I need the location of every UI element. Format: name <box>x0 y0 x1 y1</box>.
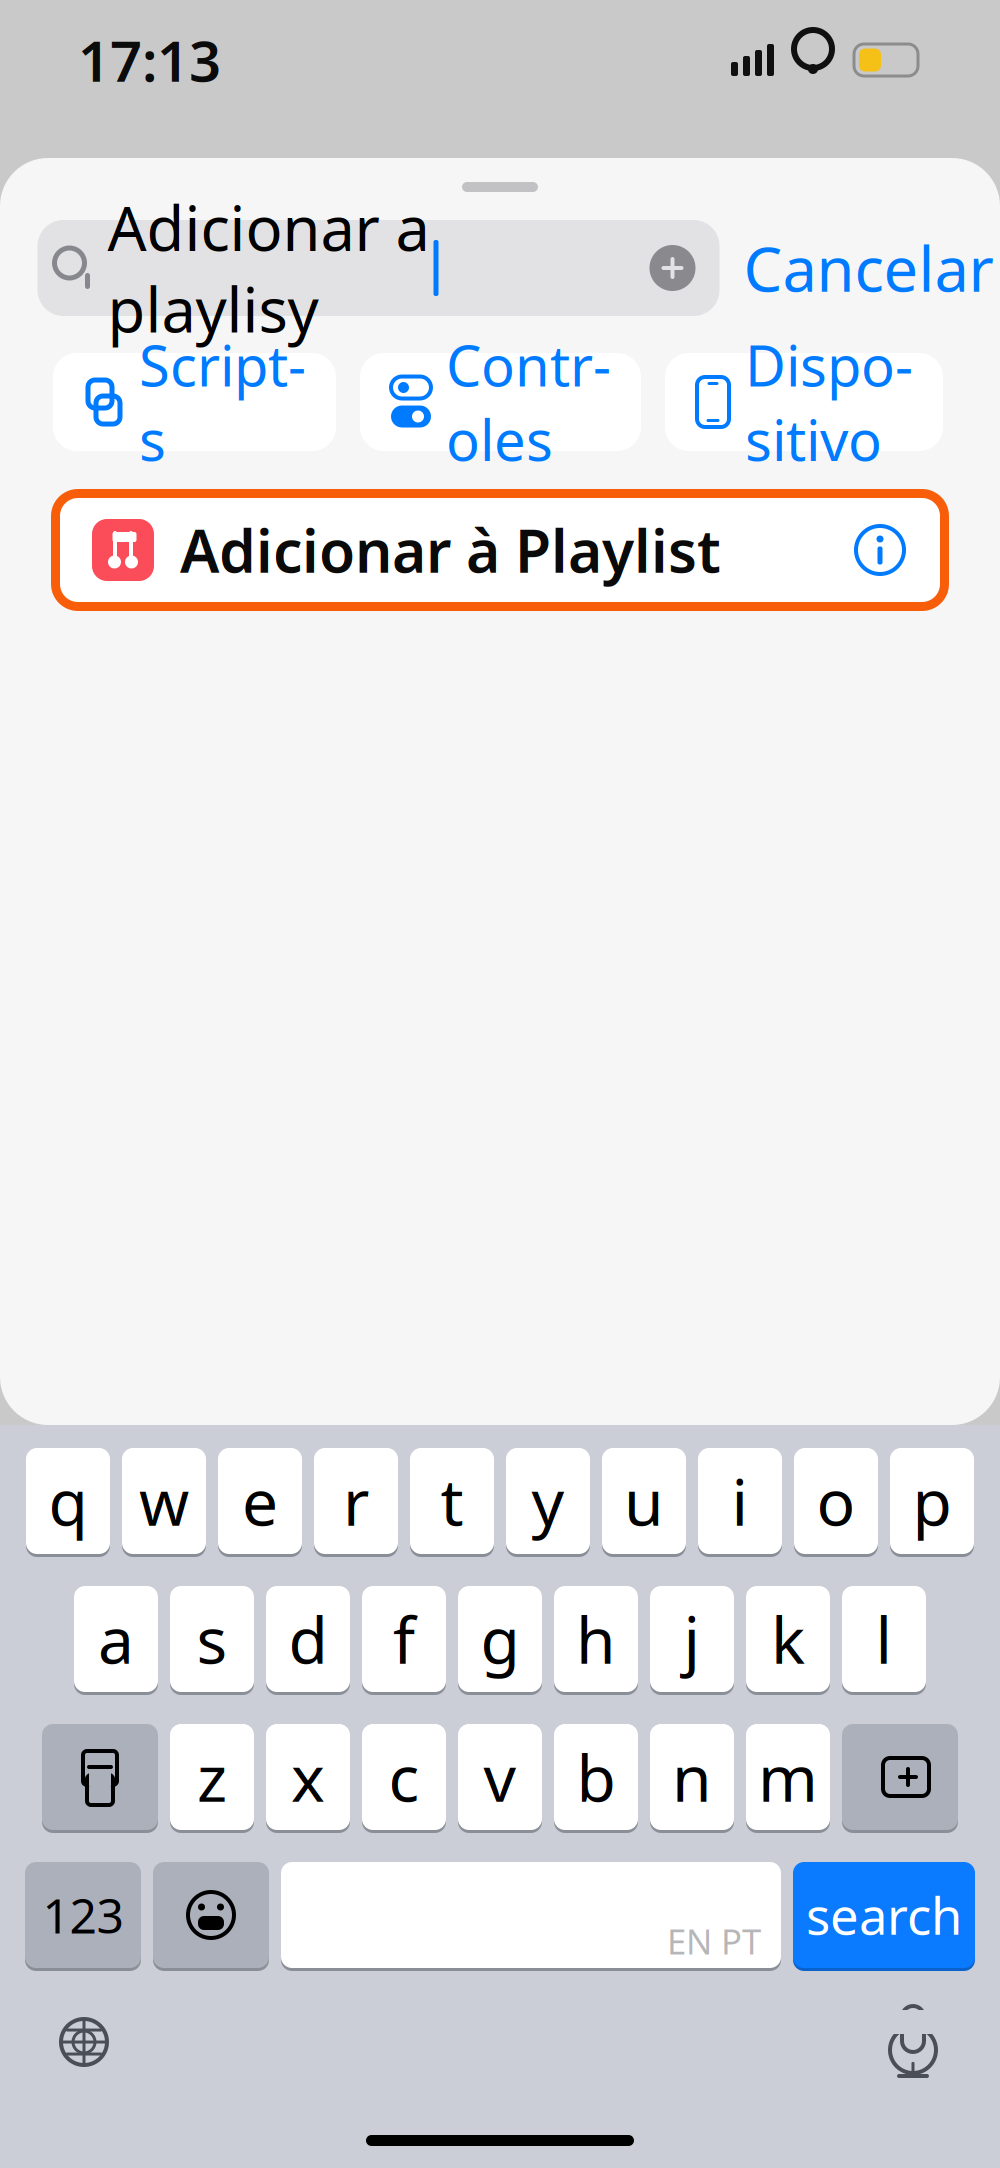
staticText: EN PT <box>667 1918 761 1964</box>
button[interactable]: m <box>746 1721 830 1833</box>
staticText: m <box>758 1734 818 1819</box>
staticText: search <box>806 1881 962 1949</box>
button[interactable]: r <box>314 1445 398 1557</box>
button[interactable]: Controles <box>360 353 641 451</box>
button[interactable]: e <box>218 1445 302 1557</box>
button[interactable]: z <box>170 1721 254 1833</box>
button[interactable]: Next keyboard <box>58 2016 110 2068</box>
staticText: Dispositivo <box>745 328 913 476</box>
button[interactable]: x <box>266 1721 350 1833</box>
staticText: u <box>624 1458 664 1543</box>
staticText: 123 <box>42 1883 123 1947</box>
staticText: k <box>771 1596 805 1681</box>
staticText: z <box>197 1734 227 1819</box>
staticText: h <box>576 1596 616 1681</box>
button[interactable]: a <box>74 1583 158 1695</box>
button[interactable]: Backspace <box>842 1721 958 1833</box>
staticText: q <box>48 1458 87 1543</box>
button[interactable]: y <box>506 1445 590 1557</box>
staticText: n <box>672 1734 712 1819</box>
staticText: c <box>388 1734 419 1819</box>
button[interactable]: s <box>170 1583 254 1695</box>
staticText: e <box>242 1458 278 1543</box>
button[interactable]: Shift <box>42 1721 158 1833</box>
staticText: d <box>288 1596 327 1681</box>
button[interactable]: Cancelar <box>719 220 1000 316</box>
button[interactable]: b <box>554 1721 638 1833</box>
button[interactable]: i <box>698 1445 782 1557</box>
staticText: y <box>531 1458 564 1543</box>
staticText: i <box>731 1458 748 1543</box>
button[interactable]: p <box>890 1445 974 1557</box>
button[interactable]: l <box>842 1583 926 1695</box>
staticText: s <box>196 1596 227 1681</box>
button[interactable]: k <box>746 1583 830 1695</box>
button[interactable]: q <box>26 1445 110 1557</box>
staticText: o <box>816 1458 855 1543</box>
button[interactable]: o <box>794 1445 878 1557</box>
staticText: Controles <box>446 328 611 476</box>
button[interactable]: Emoji <box>153 1859 269 1971</box>
button[interactable]: j <box>650 1583 734 1695</box>
button[interactable]: g <box>458 1583 542 1695</box>
button[interactable]: v <box>458 1721 542 1833</box>
button[interactable]: c <box>362 1721 446 1833</box>
staticText: Adicionar a playlisy <box>107 187 429 349</box>
staticText: Scripts <box>139 328 306 476</box>
button[interactable]: w <box>122 1445 206 1557</box>
staticText: b <box>576 1734 615 1819</box>
button[interactable]: Clear text <box>649 245 719 291</box>
staticText: l <box>875 1596 892 1681</box>
staticText: r <box>343 1458 369 1543</box>
staticText: a <box>98 1596 134 1681</box>
staticText: p <box>912 1458 951 1543</box>
button[interactable]: h <box>554 1583 638 1695</box>
staticText: Cancelar <box>743 227 993 309</box>
staticText: v <box>483 1734 516 1819</box>
button[interactable]: n <box>650 1721 734 1833</box>
button[interactable]: 123 <box>25 1859 141 1971</box>
staticText: f <box>393 1596 415 1681</box>
button[interactable]: f <box>362 1583 446 1695</box>
staticText: w <box>139 1458 189 1543</box>
button[interactable]: Adicionar à Playlist <box>51 489 949 611</box>
staticText: x <box>291 1734 325 1819</box>
staticText: g <box>480 1596 519 1681</box>
button[interactable]: t <box>410 1445 494 1557</box>
button[interactable]: Scripts <box>53 353 336 451</box>
staticText: j <box>683 1596 700 1681</box>
button[interactable]: Dictation <box>884 2003 942 2081</box>
staticText: t <box>440 1458 463 1543</box>
button[interactable]: search <box>793 1859 975 1971</box>
button[interactable]: d <box>266 1583 350 1695</box>
staticText: Adicionar à Playlist <box>180 511 721 589</box>
button[interactable]: Space <box>281 1859 781 1971</box>
button[interactable]: u <box>602 1445 686 1557</box>
staticText: 17:13 <box>78 23 221 97</box>
button[interactable]: Dispositivo <box>665 353 943 451</box>
